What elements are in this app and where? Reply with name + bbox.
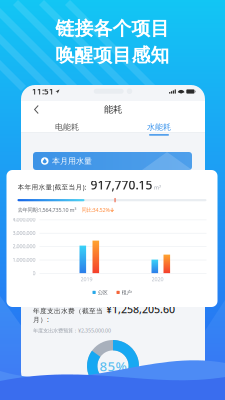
staticText: ¥1,258,205.60 — [106, 302, 175, 316]
staticText: 去年同期:1,564,735.10 m³ — [17, 206, 76, 213]
staticText: 2,000,000 — [12, 243, 35, 250]
staticText: 2019 — [80, 276, 92, 283]
staticText: 同比:34.52% — [81, 206, 109, 213]
staticText: 电能耗 — [55, 122, 79, 132]
staticText: 本月用水量 — [52, 156, 92, 166]
button[interactable]: 返回 — [21, 102, 47, 116]
button[interactable]: 电能耗 — [21, 114, 113, 137]
staticText: 0 — [32, 270, 35, 277]
staticText: 唤醒项目感知 — [55, 44, 169, 67]
staticText: 租户 — [121, 289, 131, 296]
staticText: 11:51 — [32, 86, 54, 97]
staticText: 3,000,000 — [12, 229, 35, 236]
staticText: 2020 — [151, 276, 163, 283]
staticText: 水能耗 — [147, 122, 171, 132]
staticText: 85% — [99, 357, 126, 375]
staticText: 年度支出水费（截至当月）: — [33, 307, 103, 324]
staticText: 4,000,000 — [12, 216, 35, 223]
staticText: 年度支出水费预算：¥2,355,000.00 — [33, 327, 111, 334]
button[interactable]: 水能耗 — [113, 114, 205, 137]
staticText: m³ — [154, 184, 161, 191]
staticText: 917,770.15 — [90, 177, 152, 193]
staticText: 链接各个项目 — [55, 17, 169, 40]
staticText: 公区 — [97, 289, 107, 296]
staticText: 能耗 — [104, 104, 122, 115]
staticText: 1,000,000 — [12, 256, 35, 263]
staticText: 本年用水量(截至当月): — [17, 183, 86, 192]
